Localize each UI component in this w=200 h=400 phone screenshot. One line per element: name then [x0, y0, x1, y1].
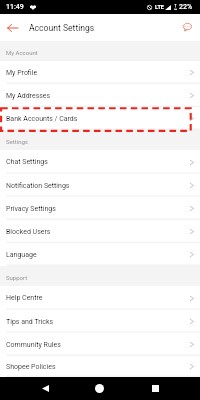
staticText: Account Settings [29, 23, 95, 33]
button[interactable]: Home [95, 384, 104, 393]
staticText: Bank Accounts / Cards [6, 115, 190, 123]
button[interactable]: Chat [178, 18, 196, 36]
staticText: Help Centre [6, 294, 190, 302]
staticText: Support [6, 274, 28, 281]
staticText: Community Rules [6, 341, 190, 349]
button[interactable]: Notification Settings [0, 174, 200, 197]
staticText: Chat Settings [6, 158, 190, 166]
staticText: Shopee Policies [6, 363, 190, 371]
button[interactable]: My Addresses [0, 84, 200, 107]
staticText: Language [6, 251, 190, 259]
button[interactable]: Blocked Users [0, 220, 200, 243]
staticText: Privacy Settings [6, 205, 190, 213]
button[interactable]: Community Rules [0, 333, 200, 356]
staticText: LTE [155, 4, 165, 11]
staticText: My Addresses [6, 92, 190, 100]
staticText: Settings [6, 138, 28, 145]
staticText: 22% [179, 3, 193, 11]
button[interactable]: Help Centre [0, 286, 200, 310]
button[interactable]: Back [42, 385, 49, 392]
button[interactable]: Tips and Tricks [0, 310, 200, 333]
button[interactable]: Chat Settings [0, 150, 200, 174]
button[interactable]: My Profile [0, 61, 200, 84]
staticText: My Profile [6, 69, 190, 77]
staticText: Tips and Tricks [6, 318, 190, 326]
button[interactable]: Privacy Settings [0, 197, 200, 220]
staticText: Blocked Users [6, 228, 190, 236]
staticText: My Account [6, 49, 38, 56]
button[interactable]: Bank Accounts / Cards [0, 107, 200, 130]
button[interactable]: Shopee Policies [0, 356, 200, 377]
button[interactable]: Language [0, 243, 200, 266]
button[interactable]: Back [0, 14, 24, 41]
staticText: 11:49 [6, 3, 24, 11]
staticText: Notification Settings [6, 182, 190, 190]
